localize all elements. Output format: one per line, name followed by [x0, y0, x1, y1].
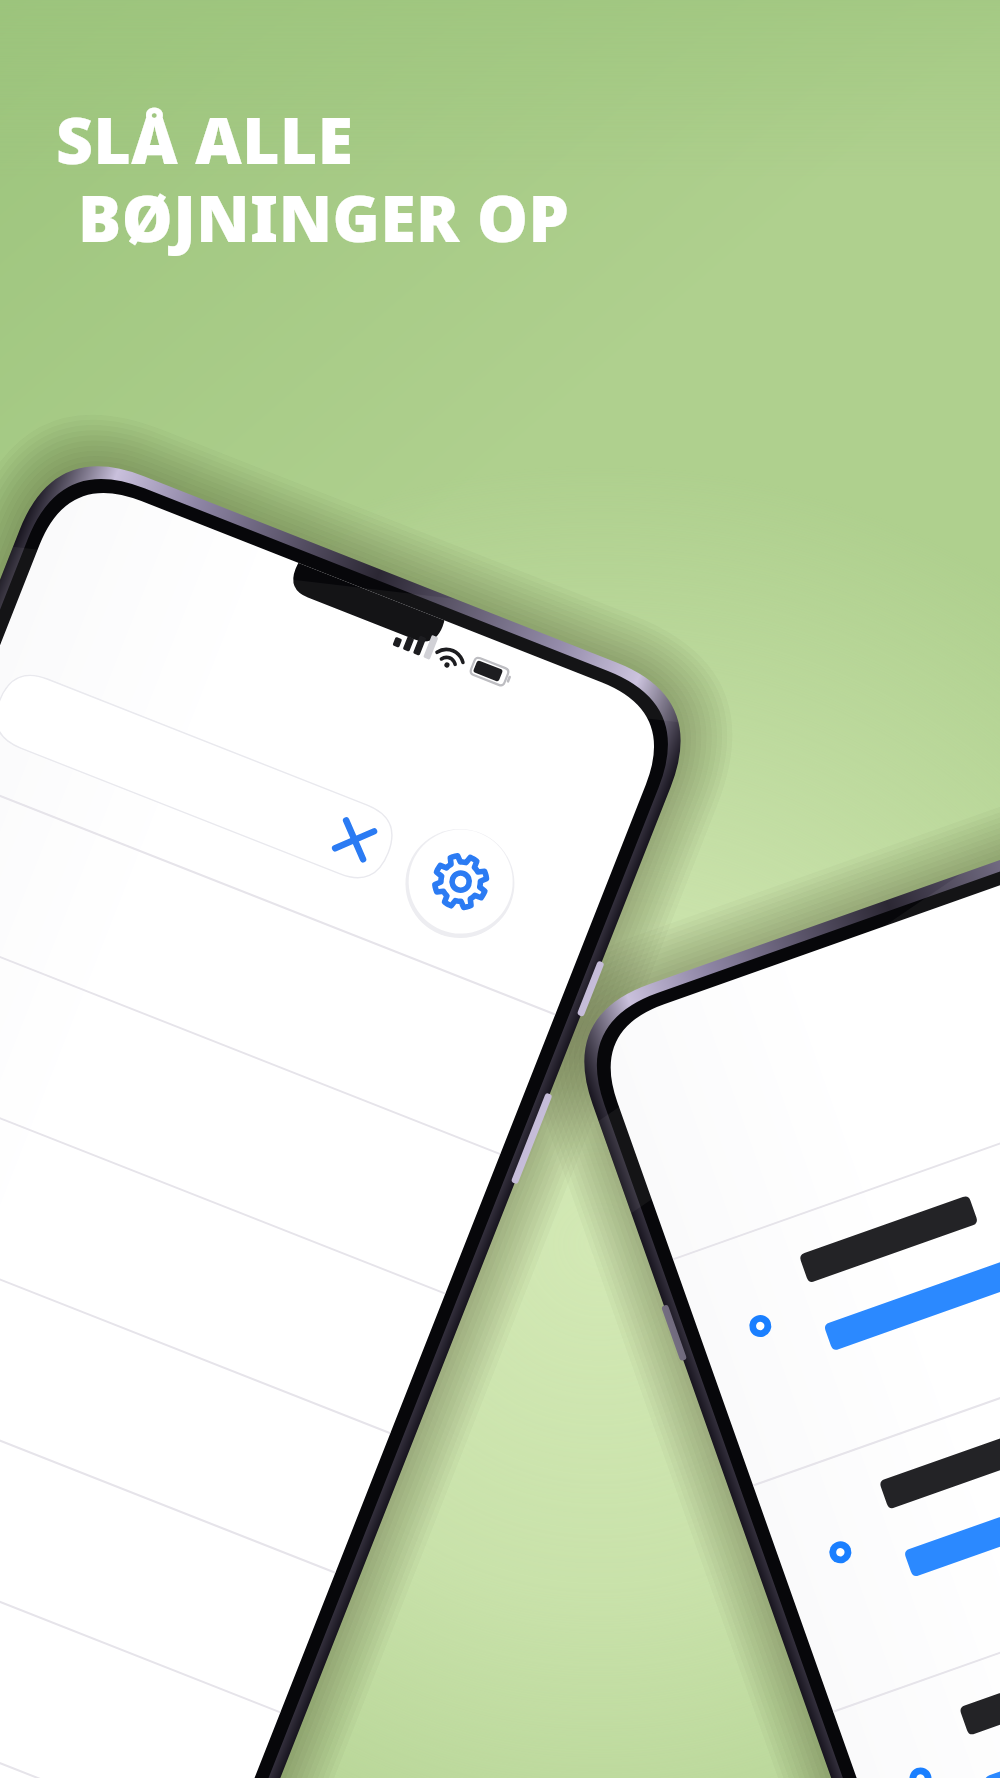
button[interactable]: Slå alle bøjninger op – app promo	[0, 0, 1000, 1778]
